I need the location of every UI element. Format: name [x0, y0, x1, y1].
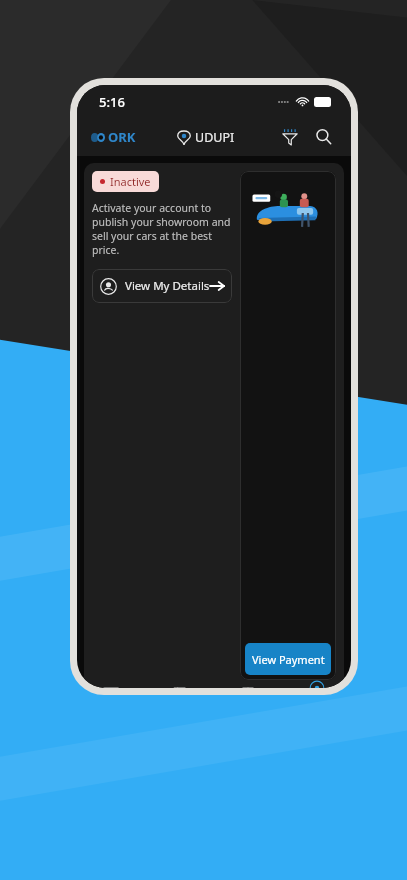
button[interactable]: UDUPI	[177, 129, 235, 146]
staticText: View Payment	[252, 652, 325, 667]
staticText: View My Details	[125, 278, 210, 294]
button[interactable]: View My Details	[92, 269, 232, 303]
button[interactable]: ORK	[91, 128, 136, 146]
staticText: ORK	[108, 128, 136, 146]
staticText: Inactive	[110, 174, 151, 189]
staticText: UDUPI	[195, 129, 235, 146]
button[interactable]: Search	[311, 124, 337, 150]
staticText: Activate your account to publish your sh…	[92, 201, 232, 257]
staticText: 5:16	[99, 93, 125, 111]
button[interactable]: View Payment	[245, 643, 331, 675]
button[interactable]: Filter	[277, 124, 303, 150]
